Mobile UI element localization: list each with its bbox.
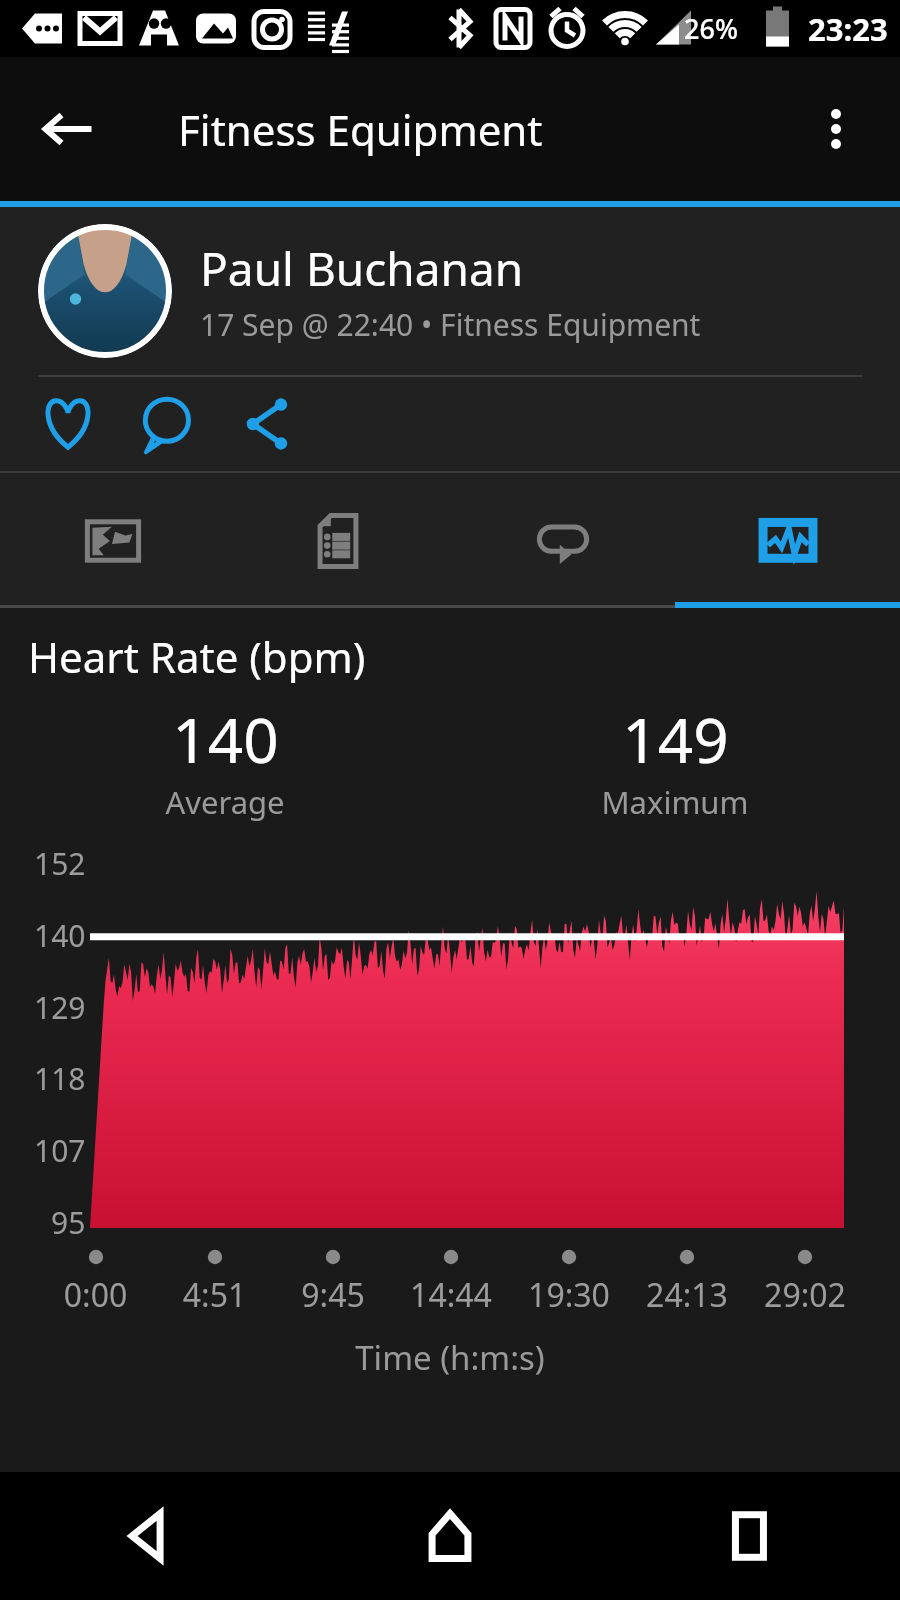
staticText: 140 bbox=[34, 915, 86, 956]
button[interactable]: Recents bbox=[600, 1472, 900, 1600]
button[interactable]: Profile photo bbox=[38, 224, 172, 358]
button[interactable]: Map bbox=[0, 473, 225, 608]
button[interactable]: More options bbox=[790, 83, 882, 175]
staticText: 95 bbox=[51, 1202, 86, 1243]
staticText: 23:23 bbox=[808, 8, 888, 50]
staticText: 29:02 bbox=[746, 1273, 864, 1317]
staticText: 9:45 bbox=[274, 1273, 392, 1317]
staticText: 149 bbox=[622, 697, 729, 781]
staticText: 4:51 bbox=[155, 1273, 274, 1317]
staticText: 152 bbox=[34, 843, 86, 884]
button[interactable]: Details bbox=[225, 473, 450, 608]
button[interactable]: Share bbox=[230, 386, 306, 462]
staticText: Time (h:m:s) bbox=[0, 1335, 900, 1380]
button[interactable]: Laps bbox=[450, 473, 675, 608]
staticText: Average bbox=[165, 781, 285, 823]
staticText: Paul Buchanan bbox=[200, 237, 524, 300]
staticText: 129 bbox=[34, 987, 86, 1028]
button[interactable]: Heart rate bbox=[675, 473, 900, 608]
staticText: 19:30 bbox=[510, 1273, 628, 1317]
staticText: 24:13 bbox=[628, 1273, 746, 1317]
staticText: 26% bbox=[684, 10, 738, 47]
button[interactable]: Back bbox=[22, 83, 114, 175]
staticText: Maximum bbox=[601, 781, 749, 823]
staticText: 107 bbox=[34, 1130, 86, 1171]
staticText: 0:00 bbox=[36, 1273, 155, 1317]
button[interactable]: Back bbox=[0, 1472, 300, 1600]
staticText: 17 Sep @ 22:40 • Fitness Equipment bbox=[200, 304, 701, 345]
button[interactable]: Like bbox=[30, 386, 106, 462]
staticText: Fitness Equipment bbox=[178, 101, 543, 158]
staticText: Heart Rate (bpm) bbox=[28, 628, 366, 685]
button[interactable]: Home bbox=[300, 1472, 600, 1600]
staticText: 14:44 bbox=[392, 1273, 510, 1317]
staticText: 118 bbox=[34, 1058, 86, 1099]
staticText: 140 bbox=[172, 697, 279, 781]
button[interactable]: Comment bbox=[130, 386, 206, 462]
